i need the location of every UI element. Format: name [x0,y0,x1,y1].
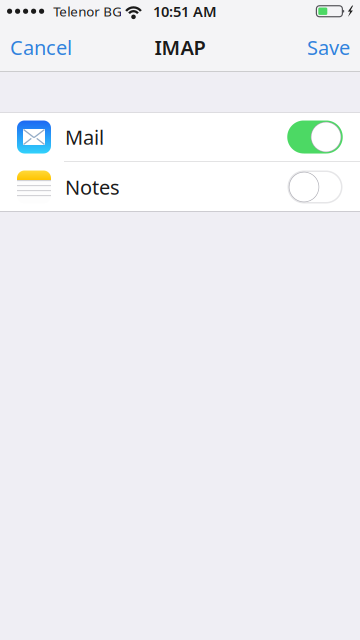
staticText: Cancel [10,34,72,61]
staticText: IMAP [154,34,205,61]
button[interactable]: Save [297,22,360,72]
staticText: Notes [65,174,120,200]
button[interactable]: Cancel [0,22,82,72]
staticText: 10:51 AM [153,1,217,21]
button[interactable]: Notes [0,162,360,212]
button[interactable]: Mail [0,112,360,162]
staticText: Save [307,34,350,61]
staticText: Telenor BG [53,2,122,20]
staticText: Mail [65,124,104,150]
